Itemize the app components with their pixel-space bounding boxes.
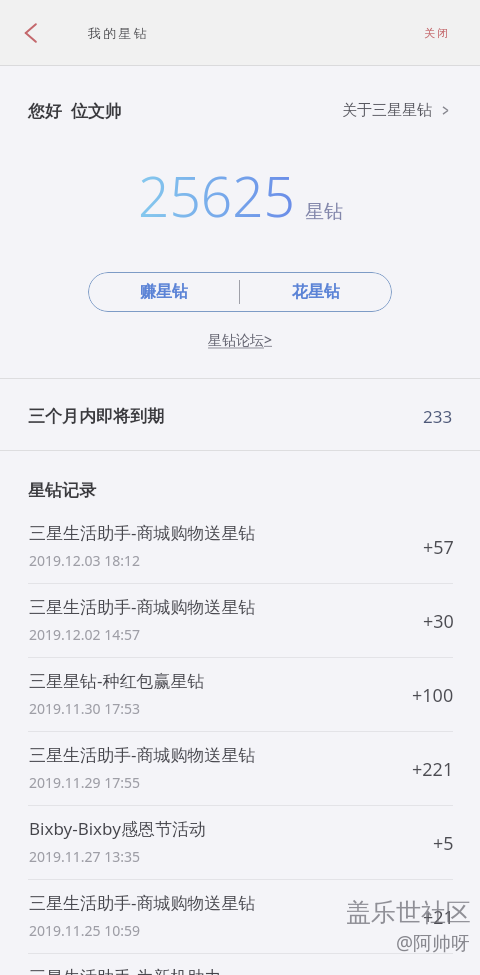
staticText: +21 (423, 905, 454, 930)
staticText: 三个月内即将到期 (28, 406, 164, 427)
staticText: 星钻记录 (28, 480, 96, 501)
staticText: 三星生活助手-商城购物送星钻 (29, 595, 256, 618)
staticText: 三星生活助手-商城购物送星钻 (29, 891, 256, 914)
button[interactable]: 三星生活助手-商城购物送星钻 (0, 584, 480, 658)
staticText: 三星生活助手-商城购物送星钻 (29, 743, 256, 766)
staticText: 盖乐世社区 (346, 897, 471, 928)
staticText: 2019.12.03 18:12 (29, 551, 140, 570)
button[interactable]: Bixby-Bixby感恩节活动 (0, 806, 480, 880)
button[interactable]: 赚星钻 (88, 272, 239, 312)
button[interactable]: 三星生活助手-商城购物送星钻 (0, 732, 480, 806)
button[interactable]: 星钻论坛> (202, 327, 279, 352)
staticText: +57 (423, 535, 454, 560)
button[interactable]: 关于三星星钻 (332, 91, 480, 130)
button[interactable]: 关闭 (401, 12, 480, 54)
staticText: @阿帅呀 (396, 930, 471, 956)
staticText: 关于三星星钻 (342, 101, 432, 120)
staticText: 2019.11.29 17:55 (29, 773, 140, 792)
staticText: 三星生活助手-为新机助力 (29, 965, 222, 975)
button[interactable]: Back (7, 9, 55, 57)
button[interactable]: 三星生活助手-商城购物送星钻 (0, 880, 480, 954)
staticText: +5 (433, 831, 454, 856)
staticText: 2019.12.02 14:57 (29, 625, 140, 644)
staticText: +100 (412, 683, 454, 708)
staticText: Bixby-Bixby感恩节活动 (29, 817, 206, 840)
staticText: 2019.11.30 17:53 (29, 699, 140, 718)
button[interactable]: 三星生活助手-为新机助力 (0, 954, 480, 975)
staticText: +221 (412, 757, 454, 782)
button[interactable]: 花星钻 (240, 272, 392, 312)
staticText: 三星星钻-种红包赢星钻 (29, 669, 205, 692)
button[interactable]: 三星生活助手-商城购物送星钻 (0, 510, 480, 584)
staticText: 2019.11.25 10:59 (29, 921, 140, 940)
button[interactable]: 三星星钻-种红包赢星钻 (0, 658, 480, 732)
staticText: 星钻论坛> (208, 330, 273, 349)
staticText: 花星钻 (292, 282, 340, 302)
staticText: 2019.11.27 13:35 (29, 847, 140, 866)
staticText: 我的星钻 (88, 25, 149, 41)
staticText: 您好 位文帅 (28, 99, 122, 122)
staticText: 赚星钻 (140, 282, 188, 302)
button[interactable]: 三个月内即将到期 (0, 381, 480, 452)
staticText: 星钻 (305, 200, 343, 224)
staticText: 25625 (138, 158, 296, 233)
staticText: 233 (423, 405, 453, 428)
staticText: 三星生活助手-商城购物送星钻 (29, 521, 256, 544)
staticText: 关闭 (423, 26, 449, 40)
staticText: +30 (423, 609, 454, 634)
